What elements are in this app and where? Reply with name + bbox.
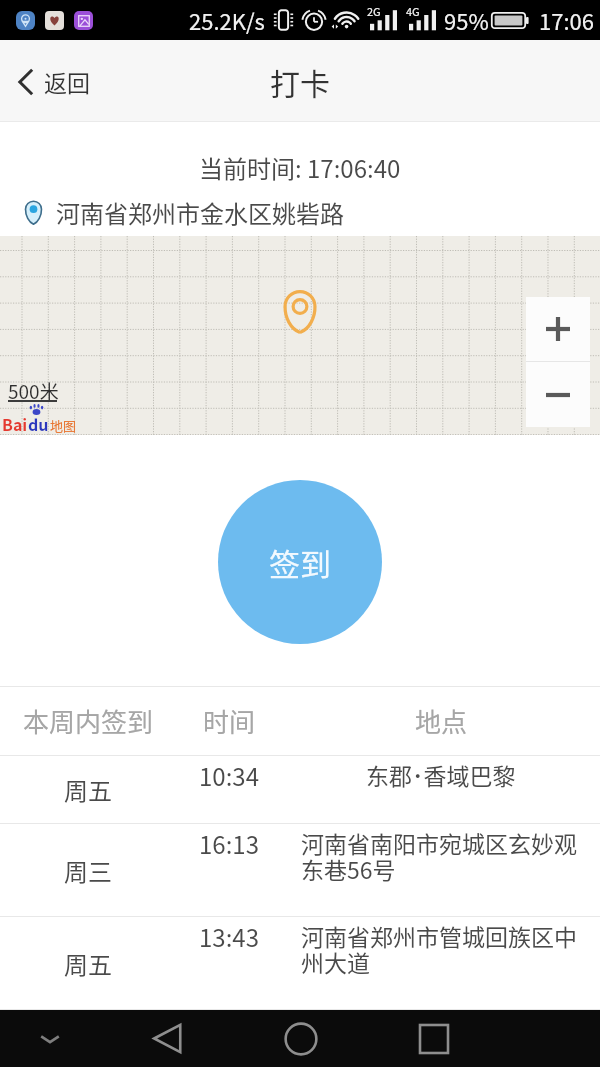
staticText: 4G	[406, 3, 420, 19]
button[interactable]: 签到	[218, 480, 382, 644]
staticText: du	[28, 412, 49, 435]
button[interactable]: Recent apps	[404, 1010, 464, 1067]
staticText: 2G	[367, 3, 381, 19]
button[interactable]: 周五	[0, 917, 600, 1009]
staticText: 地点	[415, 702, 468, 740]
staticText: 返回	[44, 65, 90, 98]
staticText: 河南省郑州市金水区姚砦路	[56, 195, 344, 230]
staticText: 河南省郑州市管城回族区中州大道	[301, 919, 582, 978]
button[interactable]: Home	[271, 1010, 331, 1067]
staticText: 500米	[8, 377, 59, 405]
staticText: 16:13	[199, 826, 259, 861]
button[interactable]: 周五	[0, 756, 600, 823]
staticText: 河南省南阳市宛城区玄妙观东巷56号	[301, 826, 582, 885]
button[interactable]: Back	[137, 1010, 197, 1067]
staticText: 时间	[203, 702, 256, 740]
staticText: 打卡	[270, 60, 330, 103]
staticText: 周五	[64, 946, 112, 981]
staticText: 周五	[64, 772, 112, 807]
staticText: 周三	[64, 853, 112, 888]
button[interactable]: Zoom in	[526, 297, 590, 361]
staticText: 签到	[269, 540, 331, 585]
staticText: 17:06	[539, 4, 594, 36]
staticText: 95%	[444, 4, 489, 36]
staticText: 13:43	[199, 919, 259, 954]
staticText: Bai	[2, 412, 28, 435]
staticText: 地图	[50, 416, 77, 435]
staticText: 本周内签到	[23, 702, 154, 740]
button[interactable]: 返回	[0, 53, 106, 110]
button[interactable]: 周三	[0, 824, 600, 916]
button[interactable]: Hide navigation bar	[26, 1015, 74, 1063]
staticText: 当前时间: 17:06:40	[199, 150, 401, 185]
staticText: 25.2K/s	[189, 4, 265, 36]
staticText: 10:34	[199, 758, 259, 793]
button[interactable]: Zoom out	[526, 362, 590, 427]
staticText: 东郡･香域巴黎	[366, 758, 516, 791]
